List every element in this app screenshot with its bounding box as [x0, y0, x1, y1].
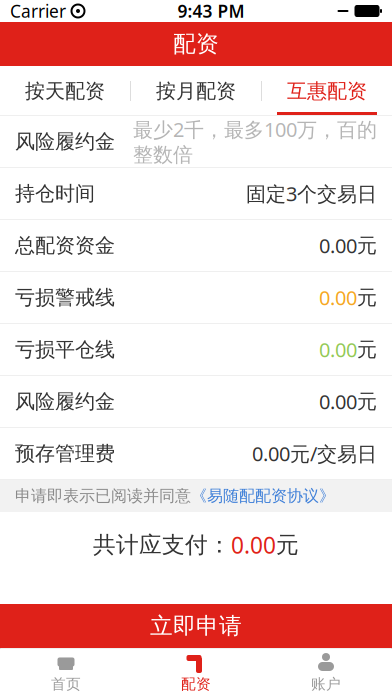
staticText: 配资 [173, 30, 219, 58]
staticText: 风险履约金 [15, 129, 115, 154]
button[interactable]: 立即申请 [0, 604, 392, 648]
button[interactable]: 按天配资 [0, 66, 130, 116]
staticText: 最少2千，最多100万，百的整数倍 [133, 116, 377, 167]
staticText: 元 [276, 531, 299, 559]
staticText: 风险履约金 [15, 389, 115, 414]
staticText: 元 [357, 389, 377, 414]
staticText: 账户 [311, 675, 341, 693]
staticText: 元/交易日 [290, 440, 377, 467]
staticText: 申请即表示已阅读并同意 [15, 486, 191, 506]
button[interactable]: 配资 [131, 648, 261, 696]
staticText: 亏损警戒线 [15, 285, 115, 310]
staticText: 《易随配配资协议》 [191, 486, 335, 506]
button[interactable]: 按月配资 [131, 66, 261, 116]
staticText: 共计应支付： [93, 531, 231, 559]
staticText: Carrier [10, 0, 66, 22]
staticText: 立即申请 [150, 612, 242, 640]
staticText: 0.00 [319, 232, 357, 259]
staticText: 0.00 [252, 440, 290, 467]
staticText: 0.00 [319, 388, 357, 415]
staticText: 元 [357, 337, 377, 362]
staticText: 元 [357, 233, 377, 258]
staticText: 按天配资 [25, 79, 105, 103]
staticText: 预存管理费 [15, 441, 115, 466]
staticText: 按月配资 [156, 79, 236, 103]
staticText: 互惠配资 [287, 79, 367, 103]
staticText: 9:43 PM [177, 0, 244, 22]
staticText: 元 [357, 285, 377, 310]
staticText: 0.00 [231, 530, 276, 560]
staticText: 0.00 [319, 284, 357, 311]
button[interactable]: 首页 [1, 648, 131, 696]
staticText: 亏损平仓线 [15, 337, 115, 362]
staticText: 配资 [181, 675, 211, 693]
button[interactable]: 互惠配资 [262, 66, 392, 116]
staticText: 0.00 [319, 336, 357, 363]
button[interactable]: 申请即表示已阅读并同意 [0, 480, 392, 512]
staticText: 持仓时间 [15, 181, 95, 206]
button[interactable]: 账户 [261, 648, 391, 696]
staticText: 固定3个交易日 [246, 180, 377, 207]
staticText: 总配资资金 [15, 233, 115, 258]
staticText: 首页 [51, 675, 81, 693]
